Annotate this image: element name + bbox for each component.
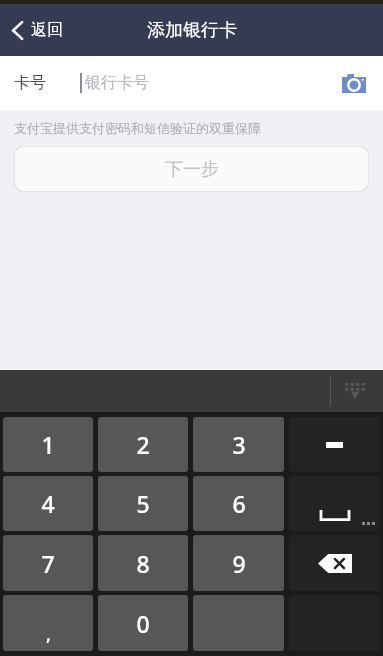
staticText: 添加银行卡 [147,19,237,42]
staticText: 支付宝提供支付密码和短信验证的双重保障 [14,120,261,136]
button[interactable]: 下一步 [14,146,369,192]
button[interactable]: 0 [98,595,188,651]
button[interactable]: Scan card with camera [339,68,369,98]
staticText: 0 [136,608,150,639]
staticText: 银行卡号 [85,73,149,93]
button[interactable]: 2 [98,417,188,472]
button[interactable]: 返回 [0,12,75,48]
staticText: 下一步 [165,158,219,181]
button[interactable]: Hide keyboard [339,375,371,407]
button[interactable]: 7 [3,535,93,591]
button[interactable]: 4 [3,476,93,531]
button[interactable]: Space [289,476,380,531]
staticText: 4 [41,488,55,519]
staticText: 9 [232,548,246,579]
button[interactable]: 卡号 [0,56,383,110]
button[interactable]: 1 [3,417,93,472]
staticText: 2 [136,429,150,460]
button[interactable]: 8 [98,535,188,591]
staticText: 5 [136,488,150,519]
staticText: 7 [41,548,55,579]
button[interactable]: Dash [289,417,380,472]
staticText: 6 [232,488,246,519]
button[interactable]: 3 [193,417,284,472]
staticText: 卡号 [14,73,46,93]
button[interactable]: , [3,595,93,651]
staticText: 3 [232,429,246,460]
button[interactable]: 9 [193,535,284,591]
staticText: 返回 [31,20,63,40]
staticText: , [46,622,51,647]
button[interactable]: Backspace [289,535,380,591]
staticText: 1 [41,429,55,460]
button[interactable]: 6 [193,476,284,531]
button[interactable]: 5 [98,476,188,531]
staticText: 8 [136,548,150,579]
